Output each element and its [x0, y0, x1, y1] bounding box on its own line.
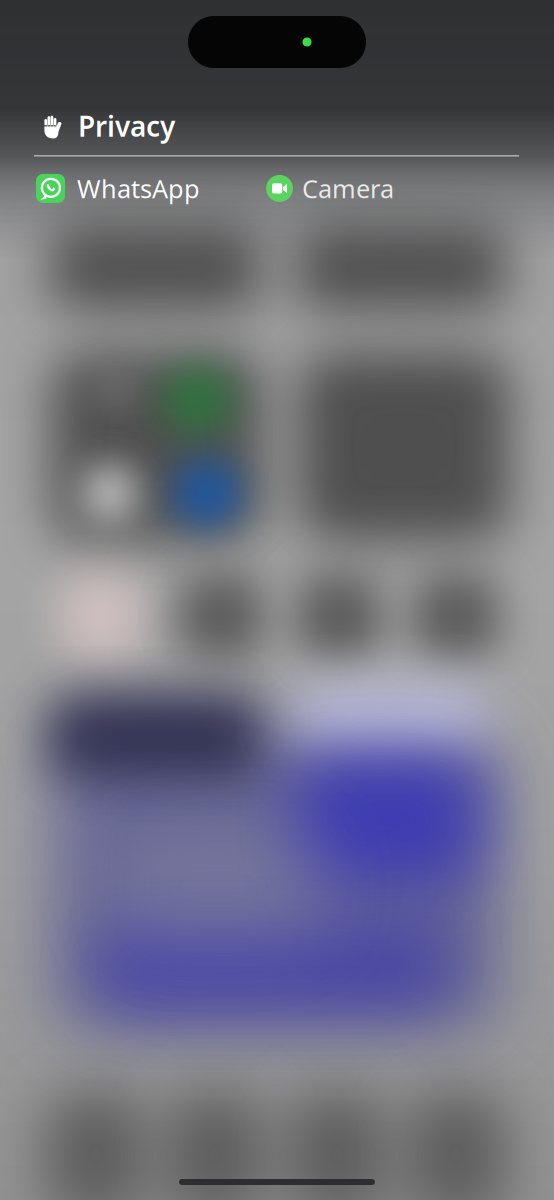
staticText: WhatsApp: [77, 172, 200, 205]
staticText: Privacy: [78, 107, 175, 145]
button[interactable]: WhatsApp: [36, 172, 266, 205]
button[interactable]: Camera: [266, 172, 394, 205]
staticText: Camera: [302, 172, 394, 205]
